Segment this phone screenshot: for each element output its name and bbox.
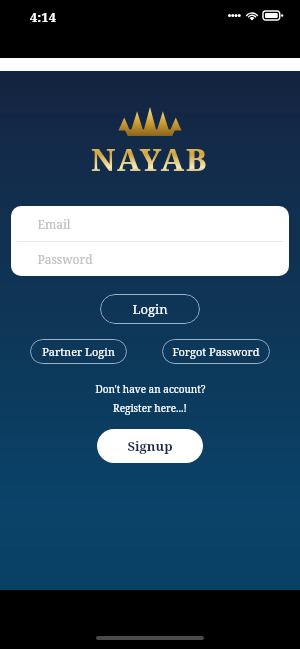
other: Battery: [263, 11, 282, 20]
other: Wi-Fi: [246, 11, 258, 20]
staticText: Forgot Password: [172, 344, 260, 359]
staticText: Signup: [127, 437, 173, 455]
staticText: Login: [132, 300, 168, 318]
staticText: Email: [37, 216, 71, 232]
staticText: Don't have an account?: [95, 382, 206, 396]
button[interactable]: Signup: [97, 429, 203, 463]
staticText: NAYAB: [91, 138, 209, 180]
button[interactable]: Login: [100, 294, 200, 324]
staticText: Register here...!: [113, 401, 187, 415]
staticText: Partner Login: [42, 344, 115, 359]
staticText: 4:14: [30, 8, 56, 26]
button[interactable]: Partner Login: [30, 339, 127, 364]
button[interactable]: Password: [11, 242, 289, 276]
staticText: Password: [37, 251, 93, 267]
button[interactable]: Email: [11, 206, 289, 241]
button[interactable]: Forgot Password: [162, 339, 270, 364]
